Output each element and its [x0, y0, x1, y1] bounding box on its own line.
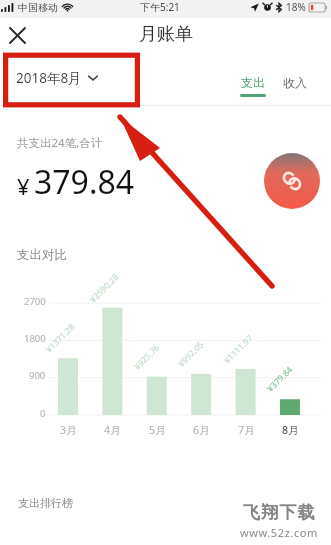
staticText: 1800: [24, 332, 46, 345]
staticText: 支出排行榜: [18, 496, 73, 510]
button[interactable]: 2018年8月: [12, 64, 102, 92]
staticText: ¥1371.28: [43, 321, 78, 355]
staticText: 下午5:21: [140, 0, 180, 14]
staticText: ¥379.84: [264, 363, 295, 394]
button[interactable]: Close: [3, 21, 31, 49]
staticText: ¥992.05: [175, 338, 206, 369]
staticText: 支出对比: [17, 247, 67, 263]
staticText: 3月: [60, 423, 77, 437]
staticText: ¥: [17, 171, 30, 201]
staticText: 900: [29, 369, 46, 382]
staticText: 5月: [149, 423, 166, 437]
staticText: ¥925.76: [131, 341, 162, 372]
staticText: 379.84: [34, 160, 135, 204]
staticText: 0: [40, 407, 46, 420]
staticText: 8月: [282, 423, 299, 437]
button[interactable]: Share link: [264, 153, 320, 209]
staticText: 2700: [24, 295, 46, 308]
staticText: 飞翔下载: [243, 502, 316, 523]
staticText: 共支出24笔,合计: [17, 135, 103, 151]
staticText: 中国移动: [18, 1, 58, 14]
staticText: ¥1111.97: [221, 332, 256, 366]
staticText: 18%: [286, 0, 306, 14]
button[interactable]: 支出: [238, 75, 268, 97]
staticText: 4月: [104, 423, 121, 437]
button[interactable]: 收入: [280, 75, 310, 97]
staticText: 月账单: [139, 23, 193, 46]
staticText: 支出: [241, 75, 265, 90]
staticText: ¥2590.28: [87, 271, 122, 305]
staticText: 2018年8月: [16, 69, 82, 87]
staticText: 收入: [283, 75, 307, 90]
staticText: 6月: [193, 423, 210, 437]
staticText: 7月: [238, 423, 255, 437]
staticText: www.52z.com: [240, 525, 318, 540]
